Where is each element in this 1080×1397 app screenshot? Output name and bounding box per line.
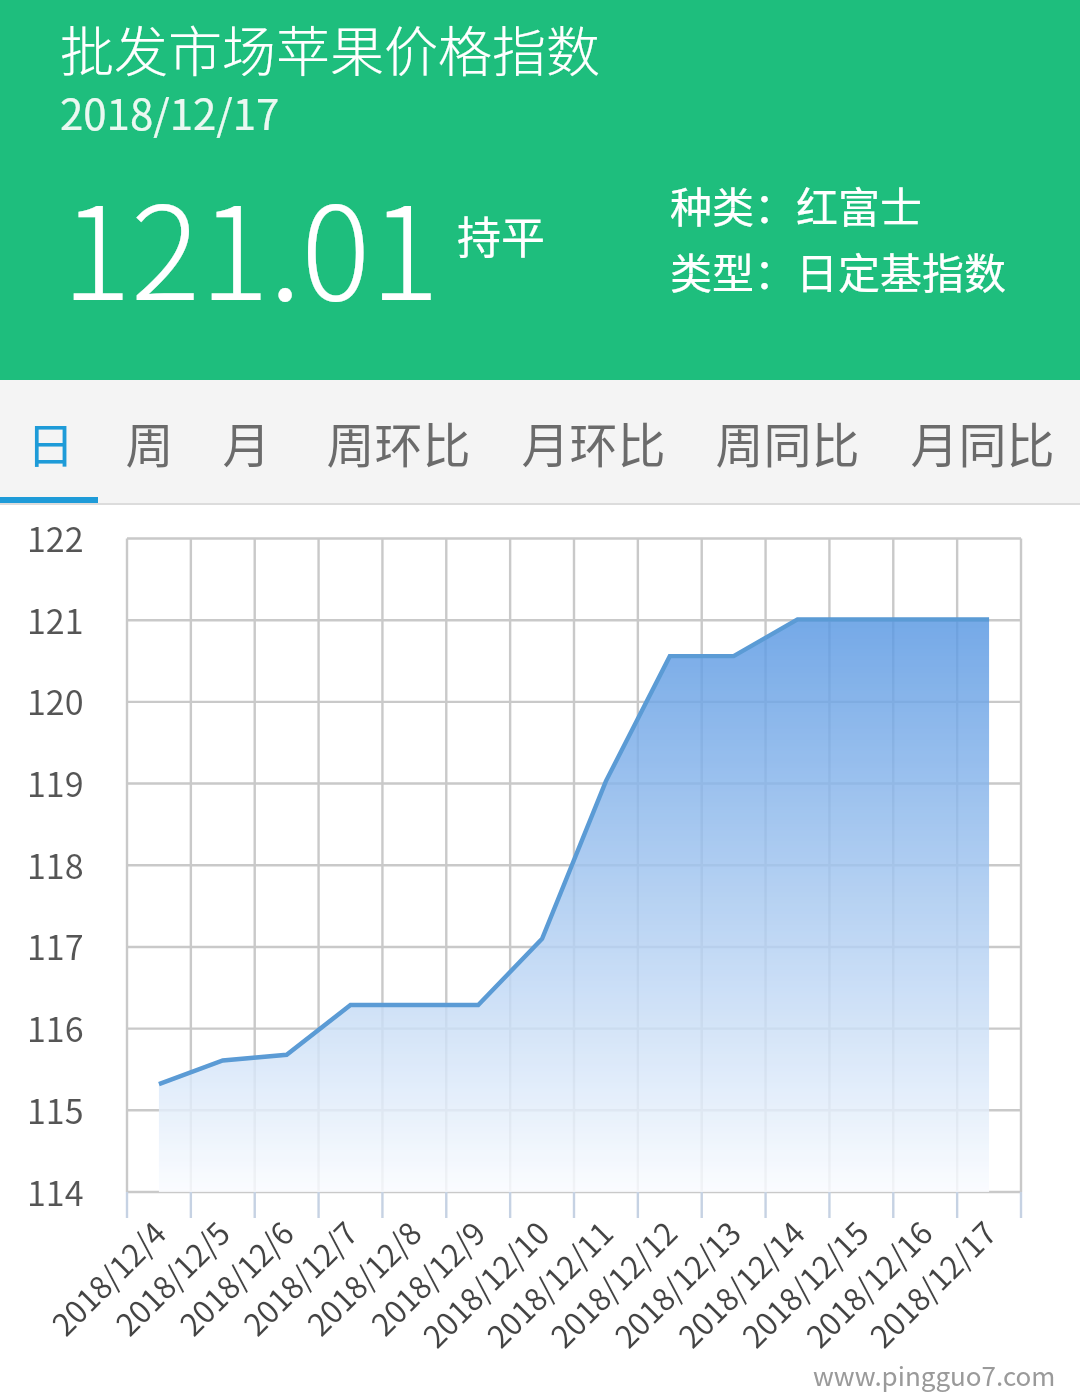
button[interactable]: 日 [0, 384, 135, 499]
button[interactable]: 周 [64, 384, 234, 499]
staticText: 类型：日定基指数 [670, 240, 1007, 301]
other: 苹果价格指数走势图 [0, 505, 1080, 1397]
staticText: 月同比 [910, 407, 1055, 477]
staticText: 月环比 [521, 407, 666, 477]
staticText: 2018/12/17 [60, 81, 280, 142]
button[interactable]: 周同比 [702, 384, 872, 499]
staticText: 批发市场苹果价格指数 [60, 9, 600, 87]
button[interactable]: 月 [161, 384, 331, 499]
staticText: 121.01 [62, 150, 440, 337]
staticText: 持平 [457, 203, 545, 267]
button[interactable]: 月同比 [897, 384, 1067, 499]
staticText: 周 [125, 407, 174, 477]
staticText: 种类：红富士 [670, 174, 923, 235]
staticText: 周环比 [326, 407, 471, 477]
staticText: 日 [26, 407, 75, 477]
button[interactable]: 周环比 [313, 384, 483, 499]
staticText: 月 [222, 407, 271, 477]
button[interactable]: 月环比 [508, 384, 678, 499]
staticText: 周同比 [715, 407, 860, 477]
